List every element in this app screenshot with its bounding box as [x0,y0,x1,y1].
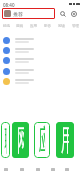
button[interactable] [0,55,83,65]
button[interactable]: 联 [1,122,10,158]
button[interactable]: Search [58,9,67,18]
staticText: 推荐 [13,11,23,17]
button[interactable]: Account [69,9,78,18]
staticText: 应用 [30,24,38,29]
staticText: 游戏 [16,24,24,29]
staticText: 管理 [72,24,80,29]
button[interactable] [0,66,83,76]
button[interactable]: 用 [56,122,74,158]
staticText: 影音 [44,24,52,29]
staticText: 应 [39,122,45,158]
button[interactable]: 阅读 [55,22,69,30]
staticText: 阅读 [58,24,66,29]
button[interactable]: 网 [12,122,29,158]
button[interactable] [0,45,83,55]
button[interactable]: 管理 [69,22,83,30]
button[interactable]: 精选 [0,22,13,30]
staticText: 精选 [3,24,11,29]
button[interactable]: 应 [34,122,50,158]
button[interactable]: 游戏 [13,22,27,30]
button[interactable]: 推荐 [2,8,55,19]
button[interactable]: 应用 [27,22,41,30]
staticText: 联 [4,122,6,158]
staticText: 用 [61,122,69,158]
button[interactable] [0,35,83,45]
staticText: 08:40 [3,2,15,8]
button[interactable]: 影音 [41,22,55,30]
button[interactable] [0,76,83,86]
staticText: 网 [17,122,24,158]
